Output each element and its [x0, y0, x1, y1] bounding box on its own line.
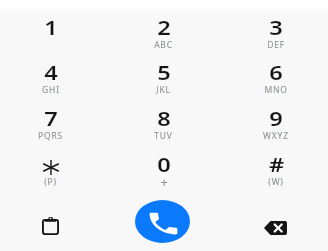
staticText: ABC	[154, 39, 173, 51]
button[interactable]: 4	[0, 59, 105, 105]
staticText: GHI	[42, 84, 60, 96]
staticText: 6	[269, 59, 283, 86]
button[interactable]: 1	[0, 14, 105, 60]
button[interactable]: 6	[221, 59, 328, 105]
staticText: 3	[269, 14, 283, 41]
staticText: MNO	[264, 84, 288, 96]
staticText: 4	[44, 59, 58, 86]
staticText: *	[44, 151, 57, 178]
staticText: 1	[44, 14, 58, 41]
button[interactable]: Call	[135, 200, 190, 243]
button[interactable]: 3	[221, 14, 328, 60]
staticText: 9	[269, 105, 283, 132]
staticText: 2	[157, 14, 171, 41]
staticText: 7	[44, 105, 58, 132]
staticText: (W)	[268, 176, 284, 188]
staticText: +	[160, 173, 169, 191]
button[interactable]: 8	[109, 105, 218, 151]
staticText: PQRS	[38, 130, 63, 142]
button[interactable]: Paste	[10, 201, 90, 251]
staticText: 0	[157, 151, 171, 178]
staticText: (P)	[44, 176, 57, 188]
button[interactable]: 7	[0, 105, 105, 151]
button[interactable]: Delete	[235, 203, 315, 251]
staticText: 5	[157, 59, 171, 86]
button[interactable]: *	[0, 151, 105, 197]
button[interactable]: 0	[109, 151, 218, 197]
staticText: #	[269, 151, 284, 178]
button[interactable]: 5	[109, 59, 218, 105]
staticText: JKL	[156, 84, 171, 96]
staticText: WXYZ	[263, 130, 289, 142]
button[interactable]: 9	[221, 105, 328, 151]
staticText: DEF	[267, 39, 285, 51]
button[interactable]: #	[221, 151, 328, 197]
staticText: TUV	[154, 130, 173, 142]
button[interactable]: 2	[109, 14, 218, 60]
staticText: 8	[157, 105, 171, 132]
